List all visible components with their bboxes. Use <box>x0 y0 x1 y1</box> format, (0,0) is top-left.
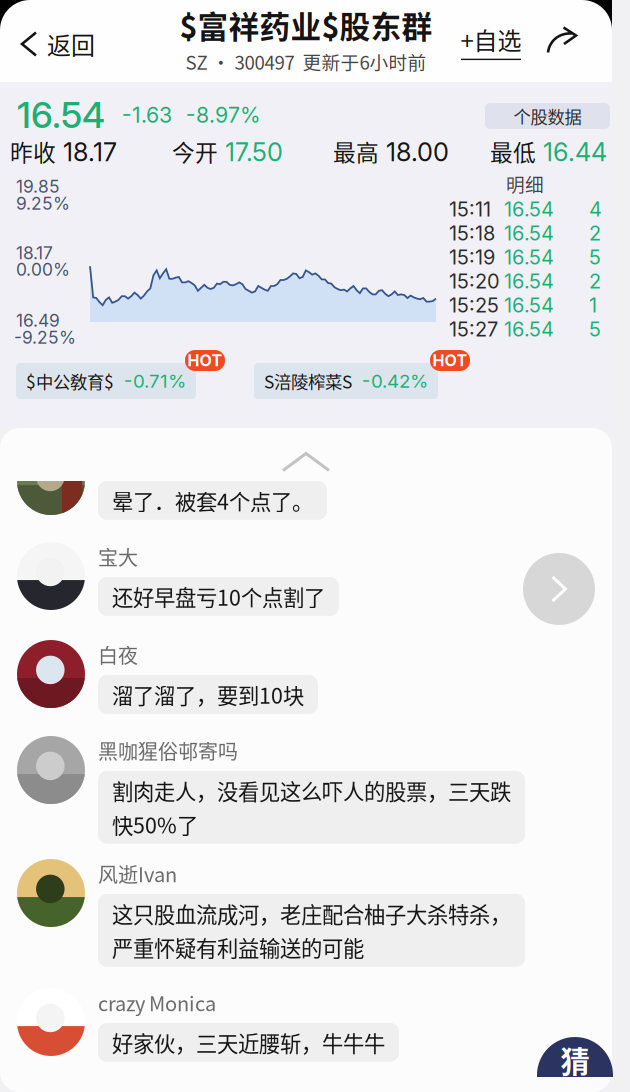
staticText: 这只股血流成河，老庄配合柚子大杀特杀， <box>112 898 511 929</box>
staticText: 快50%了 <box>112 809 198 840</box>
staticText: 今开 <box>172 135 218 168</box>
button[interactable]: 返回 <box>0 16 111 72</box>
button[interactable]: 下一条 <box>523 553 595 625</box>
staticText: 昨收 <box>10 135 56 168</box>
staticText: 风逝Ivan <box>98 859 177 888</box>
staticText: 15:19 <box>449 245 495 269</box>
staticText: 晕了．被套4个点了。 <box>112 485 313 516</box>
button[interactable]: 分享 <box>540 18 586 64</box>
staticText: 白夜 <box>98 640 138 669</box>
staticText: 黑咖猩俗邨寄吗 <box>98 736 238 765</box>
staticText: 明细 <box>506 170 544 197</box>
staticText: 19.85 <box>16 176 60 197</box>
staticText: 15:18 <box>449 221 495 245</box>
staticText: 18.00 <box>386 137 449 167</box>
staticText: S涪陵榨菜S <box>264 368 352 394</box>
staticText: 16.44 <box>543 137 607 167</box>
staticText: 好家伙，三天近腰斩，牛牛牛 <box>112 1027 385 1058</box>
staticText: HOT <box>432 351 467 370</box>
staticText: 16.49 <box>16 310 60 331</box>
button[interactable]: S涪陵榨菜S <box>254 363 438 399</box>
staticText: 割肉走人，没看见这么吓人的股票，三天跌 <box>112 775 511 806</box>
staticText: SZ · 300497 更新于6小时前 <box>185 48 426 75</box>
staticText: +自选 <box>460 22 521 57</box>
staticText: -9.25% <box>14 327 76 348</box>
staticText: 5 <box>589 245 601 269</box>
button[interactable]: 猜 <box>537 1037 613 1077</box>
staticText: 还好早盘亏10个点割了 <box>112 581 325 612</box>
staticText: 返回 <box>47 27 95 61</box>
staticText: $富祥药业$股东群 <box>179 3 432 47</box>
button[interactable]: +自选 <box>446 18 536 64</box>
staticText: $中公敎育$ <box>26 368 114 394</box>
staticText: 9.25% <box>16 193 70 214</box>
staticText: -8.97% <box>186 102 261 128</box>
staticText: 0.00% <box>16 259 70 280</box>
button[interactable]: 个股数据 <box>485 103 610 129</box>
staticText: -0.71% <box>124 370 186 392</box>
staticText: 16.54 <box>504 293 554 317</box>
staticText: 2 <box>589 221 601 245</box>
staticText: 1 <box>589 293 597 317</box>
staticText: 5 <box>589 317 601 341</box>
staticText: 猜 <box>560 1039 589 1081</box>
staticText: 15:20 <box>449 269 500 293</box>
staticText: 溜了溜了，要到10块 <box>112 679 304 710</box>
staticText: 4 <box>589 197 602 221</box>
staticText: 17.50 <box>225 137 283 167</box>
staticText: 16.54 <box>504 221 554 245</box>
staticText: 15:11 <box>449 197 491 221</box>
staticText: -1.63 <box>122 102 172 128</box>
staticText: 16.54 <box>17 93 105 137</box>
staticText: 严重怀疑有利益输送的可能 <box>112 932 364 963</box>
staticText: 个股数据 <box>513 103 581 129</box>
staticText: 宝大 <box>98 542 138 571</box>
staticText: 最高 <box>333 135 379 168</box>
staticText: 18.17 <box>63 137 117 167</box>
button[interactable]: $中公敎育$ <box>16 363 196 399</box>
staticText: 2 <box>589 269 601 293</box>
staticText: 15:27 <box>449 317 498 341</box>
staticText: 16.54 <box>504 245 554 269</box>
staticText: 16.54 <box>504 269 554 293</box>
staticText: -0.42% <box>362 370 428 392</box>
staticText: crazy Monica <box>98 988 216 1017</box>
staticText: 18.17 <box>16 242 53 263</box>
staticText: 15:25 <box>449 293 499 317</box>
staticText: 16.54 <box>504 317 554 341</box>
staticText: HOT <box>187 351 222 370</box>
staticText: 16.54 <box>504 197 554 221</box>
staticText: 最低 <box>490 135 536 168</box>
